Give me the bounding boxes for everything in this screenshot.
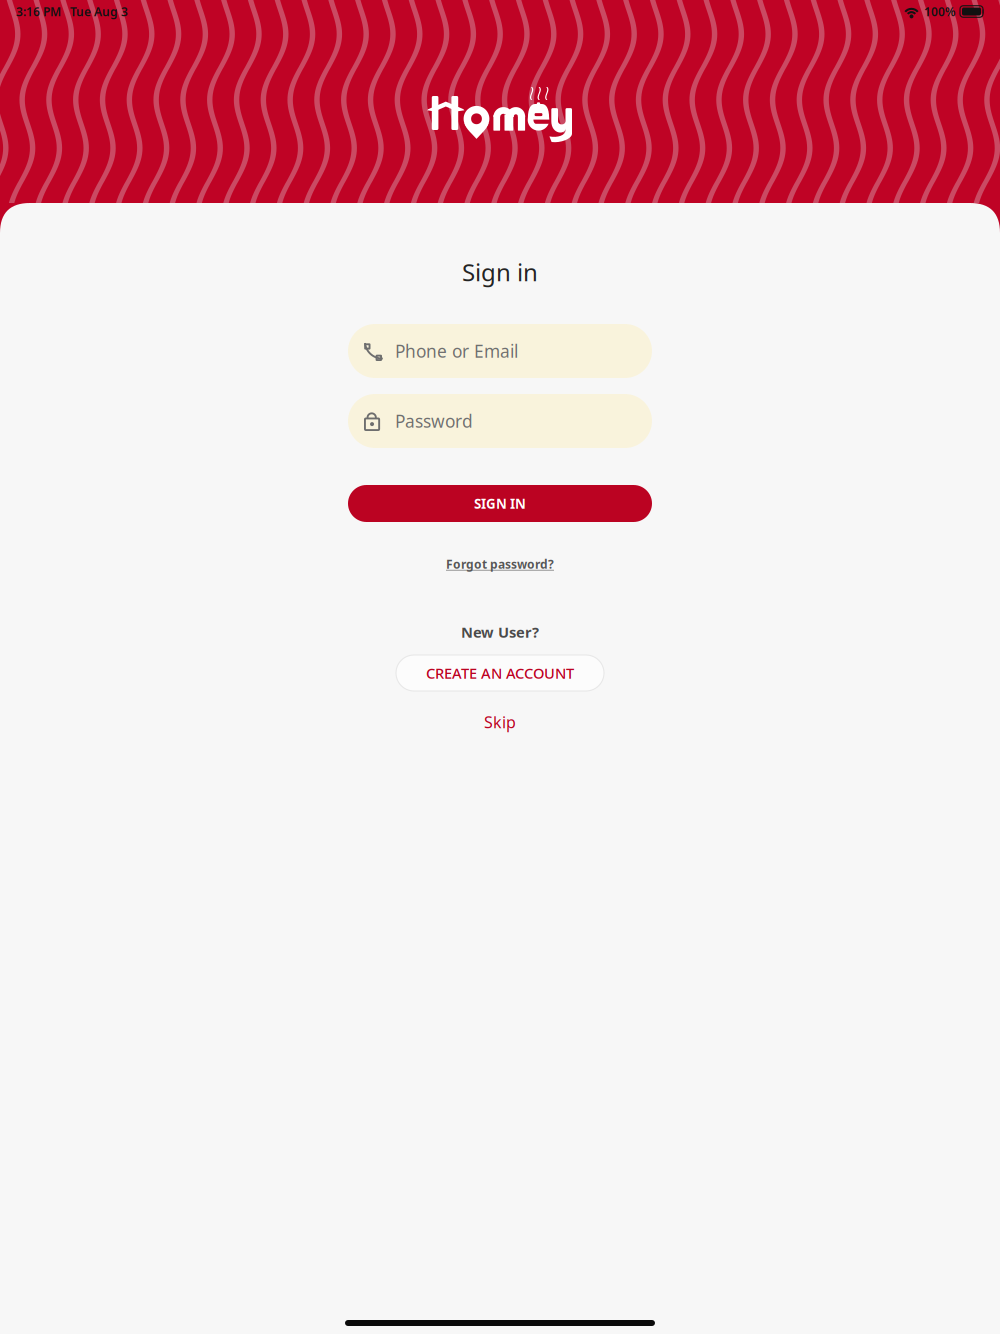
staticText: Tue Aug 3 [61,3,128,19]
button[interactable]: CREATE AN ACCOUNT [396,655,604,691]
staticText: CREATE AN ACCOUNT [426,663,574,683]
button[interactable]: SIGN IN [348,485,652,522]
staticText: 3:16 PM [16,3,61,19]
staticText: SIGN IN [474,495,526,512]
button[interactable]: Phone or Email [348,324,652,378]
staticText: Password [395,409,473,432]
staticText: Phone or Email [395,339,518,362]
staticText: 100% [924,3,956,19]
staticText: Forgot password? [446,556,554,572]
staticText: New User? [461,622,539,642]
staticText: Sign in [462,256,538,288]
button[interactable]: Forgot password? [446,554,554,574]
button[interactable]: Password [348,394,652,448]
staticText: Skip [484,711,516,733]
button[interactable]: Skip [484,711,516,733]
